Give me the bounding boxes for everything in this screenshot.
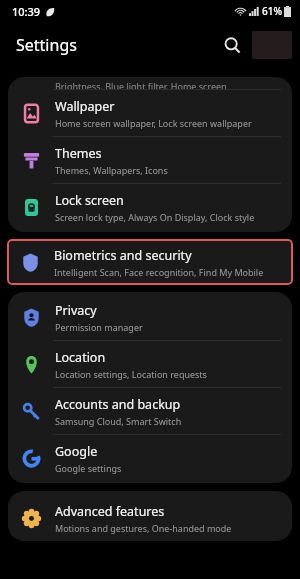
staticText: Google: [55, 443, 98, 460]
button[interactable]: Advanced features: [8, 495, 292, 541]
staticText: Samsung Cloud, Smart Switch: [55, 415, 182, 427]
staticText: Accounts and backup: [55, 396, 181, 413]
button[interactable]: Lock screen: [8, 184, 292, 230]
staticText: 61%: [262, 4, 282, 18]
button[interactable]: Themes: [8, 137, 292, 183]
staticText: Motions and gestures, One-handed mode: [55, 522, 232, 534]
staticText: Themes: [55, 145, 102, 162]
staticText: Wallpaper: [55, 98, 115, 115]
button[interactable]: Wallpaper: [8, 90, 292, 136]
staticText: Settings: [16, 34, 77, 56]
staticText: Location: [55, 349, 106, 366]
staticText: Permission manager: [55, 321, 143, 333]
button[interactable]: Search: [214, 27, 250, 63]
staticText: Lock screen: [55, 192, 124, 209]
button[interactable]: Google: [8, 435, 292, 481]
button[interactable]: Location: [8, 341, 292, 387]
staticText: Google settings: [55, 462, 122, 474]
button[interactable]: Biometrics and security: [7, 239, 293, 285]
staticText: Intelligent Scan, Face recognition, Find…: [54, 266, 264, 278]
staticText: 10:39: [12, 4, 41, 19]
staticText: Location settings, Location requests: [55, 368, 207, 380]
staticText: Privacy: [55, 302, 97, 319]
staticText: Home screen wallpaper, Lock screen wallp…: [55, 117, 252, 129]
button[interactable]: Privacy: [8, 294, 292, 340]
staticText: Advanced features: [55, 503, 165, 520]
staticText: Themes, Wallpapers, Icons: [55, 164, 168, 176]
staticText: Brightness, Blue light filter, Home scre…: [55, 80, 227, 89]
staticText: Biometrics and security: [54, 247, 192, 264]
button[interactable]: Brightness, Blue light filter, Home scre…: [8, 80, 292, 89]
button[interactable]: Accounts and backup: [8, 388, 292, 434]
staticText: Screen lock type, Always On Display, Clo…: [55, 211, 255, 223]
